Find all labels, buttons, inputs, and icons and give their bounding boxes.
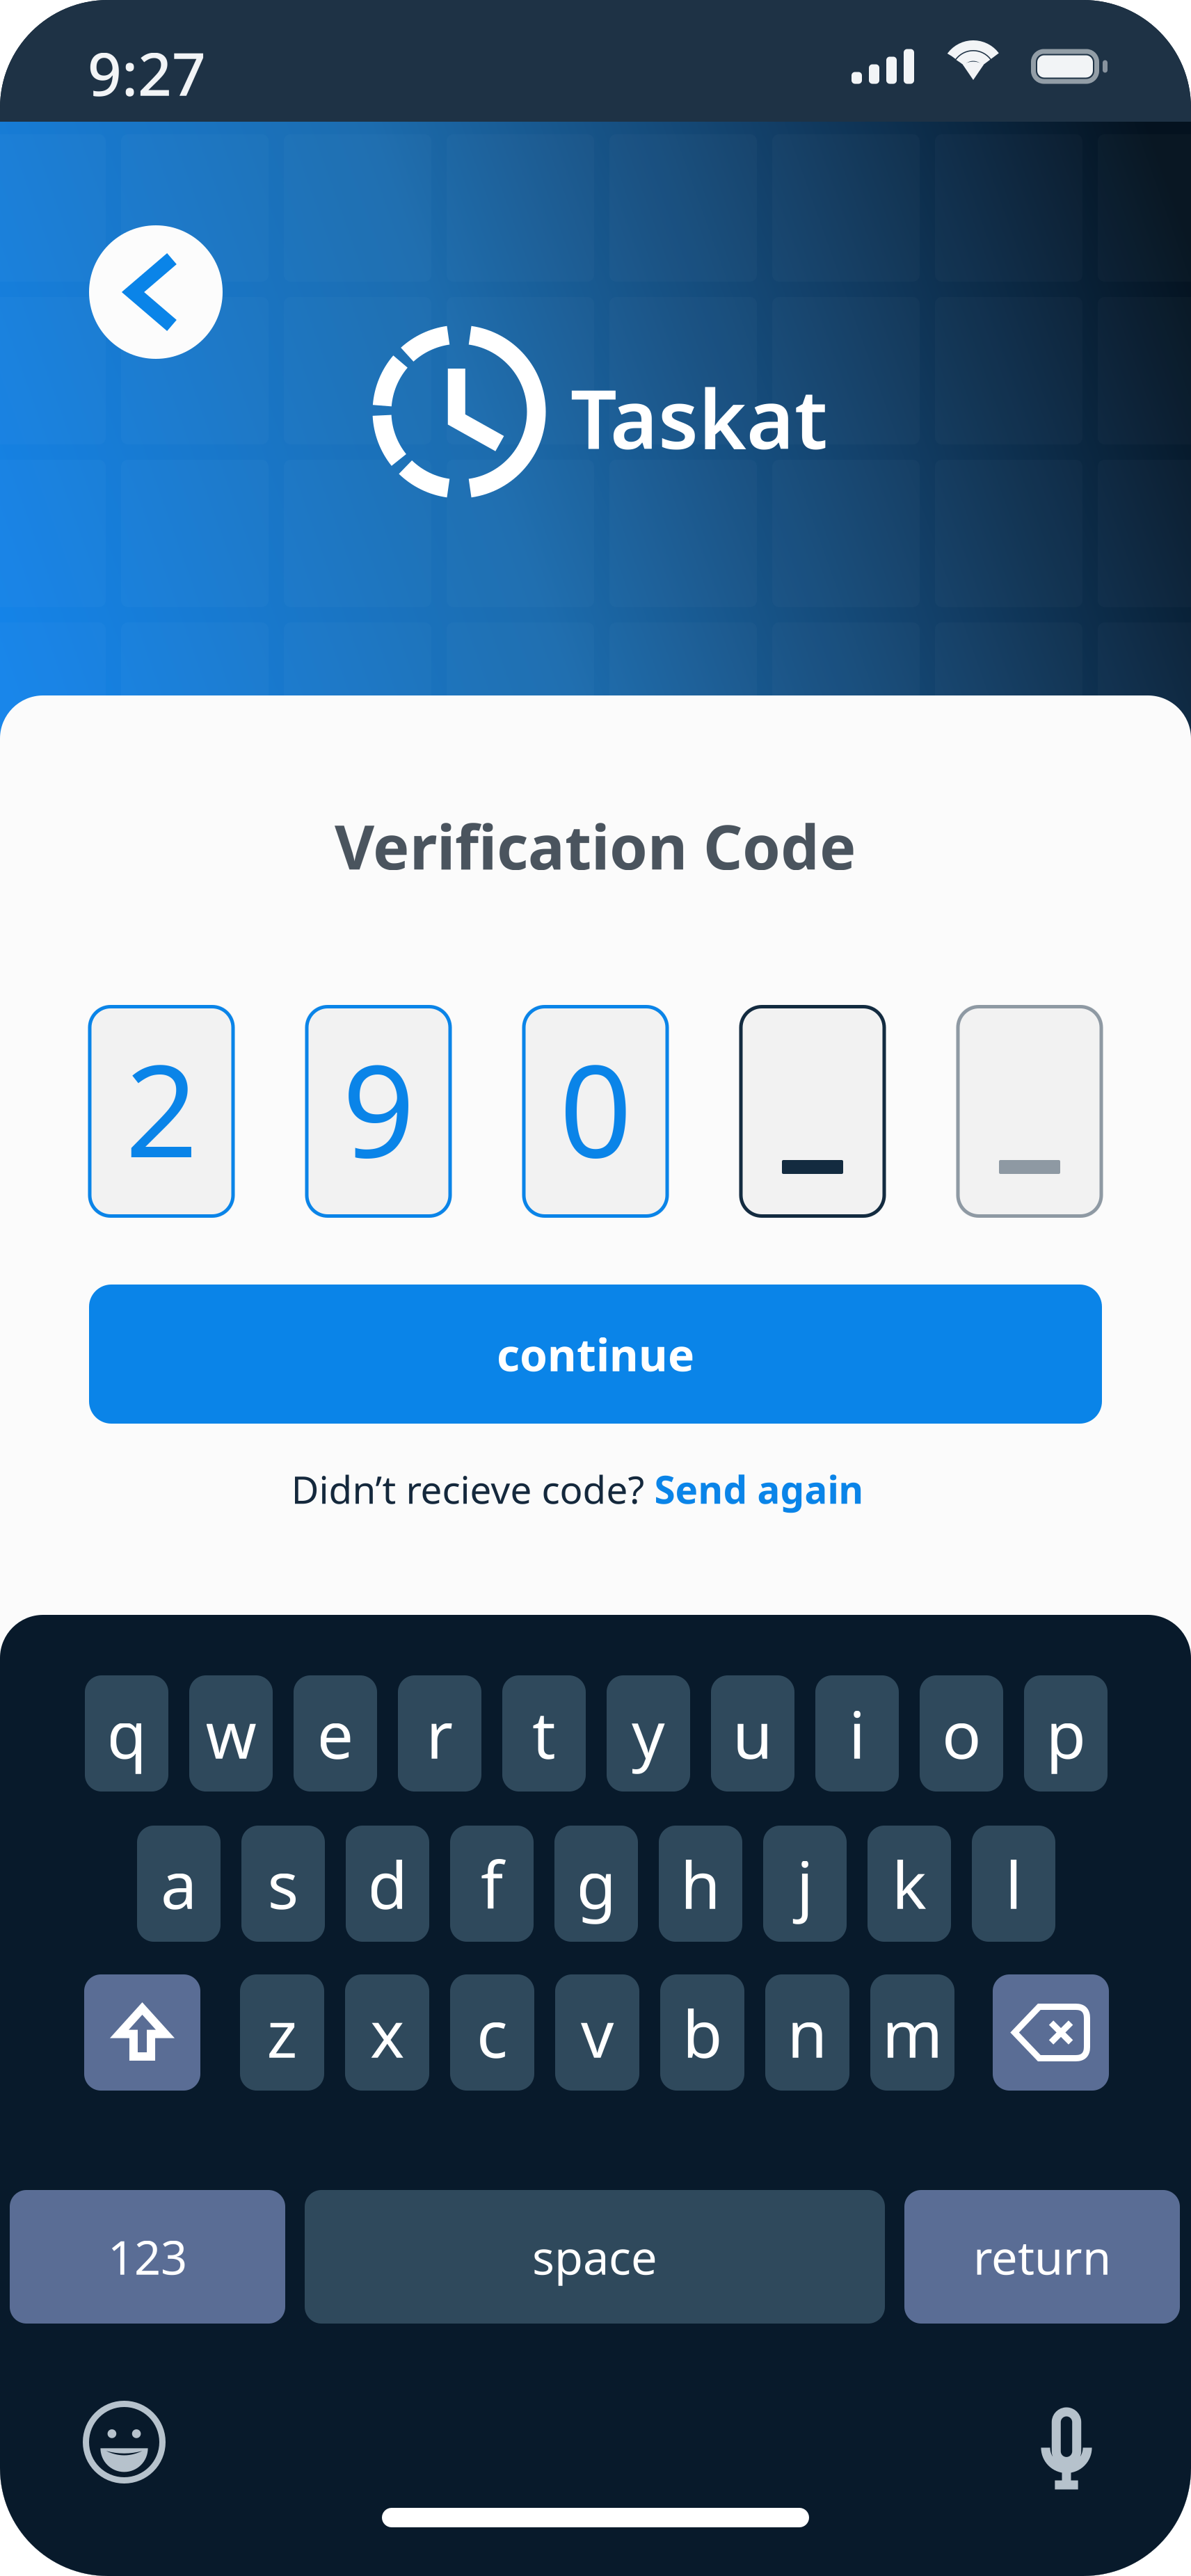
staticText: h bbox=[680, 1841, 721, 1927]
staticText: f bbox=[481, 1841, 503, 1927]
button[interactable]: z bbox=[240, 1974, 324, 2091]
staticText: v bbox=[581, 1989, 614, 2076]
staticText: e bbox=[317, 1690, 354, 1776]
button[interactable]: w bbox=[189, 1675, 273, 1792]
staticText: Send again bbox=[654, 1464, 864, 1514]
staticText: z bbox=[267, 1989, 297, 2076]
staticText: w bbox=[206, 1690, 256, 1776]
button[interactable]: return bbox=[904, 2190, 1180, 2324]
button[interactable]: h bbox=[659, 1826, 742, 1942]
staticText: Taskat bbox=[570, 363, 828, 471]
staticText: u bbox=[733, 1690, 773, 1776]
button[interactable]: o bbox=[920, 1675, 1003, 1792]
staticText: continue bbox=[497, 1325, 694, 1384]
staticText: Didn’t recieve code? bbox=[291, 1464, 645, 1514]
staticText: 9:27 bbox=[88, 33, 206, 112]
staticText: b bbox=[682, 1989, 722, 2076]
staticText: a bbox=[161, 1841, 197, 1927]
staticText: p bbox=[1046, 1690, 1086, 1776]
staticText: i bbox=[849, 1690, 865, 1776]
button[interactable]: e bbox=[294, 1675, 377, 1792]
button[interactable]: d bbox=[346, 1826, 429, 1942]
button[interactable]: Didn’t recieve code? bbox=[0, 1461, 1173, 1517]
button[interactable]: s bbox=[241, 1826, 325, 1942]
staticText: r bbox=[426, 1690, 453, 1776]
button[interactable]: q bbox=[85, 1675, 168, 1792]
staticText: n bbox=[787, 1989, 828, 2076]
staticText: k bbox=[892, 1841, 927, 1927]
button[interactable]: j bbox=[763, 1826, 847, 1942]
button[interactable]: g bbox=[554, 1826, 638, 1942]
staticText: 9 bbox=[342, 1024, 415, 1192]
button[interactable]: f bbox=[450, 1826, 534, 1942]
staticText: 123 bbox=[108, 2226, 187, 2288]
staticText: j bbox=[797, 1841, 813, 1927]
button[interactable]: r bbox=[398, 1675, 481, 1792]
button[interactable]: Dictate bbox=[1028, 2395, 1105, 2502]
button[interactable]: y bbox=[607, 1675, 690, 1792]
button[interactable]: k bbox=[868, 1826, 951, 1942]
staticText: return bbox=[973, 2226, 1111, 2288]
staticText: s bbox=[267, 1841, 299, 1927]
button[interactable]: continue bbox=[89, 1285, 1102, 1424]
staticText: l bbox=[1005, 1841, 1022, 1927]
staticText: y bbox=[632, 1690, 665, 1776]
button[interactable]: i bbox=[815, 1675, 899, 1792]
button[interactable]: n bbox=[765, 1974, 849, 2091]
staticText: t bbox=[532, 1690, 556, 1776]
button[interactable]: space bbox=[305, 2190, 885, 2324]
staticText: space bbox=[532, 2226, 657, 2288]
button[interactable]: Shift bbox=[84, 1974, 200, 2091]
staticText: Verification Code bbox=[335, 805, 856, 886]
button[interactable]: a bbox=[137, 1826, 221, 1942]
button[interactable]: u bbox=[711, 1675, 794, 1792]
staticText: c bbox=[477, 1989, 508, 2076]
staticText: q bbox=[107, 1690, 146, 1776]
button[interactable]: c bbox=[450, 1974, 534, 2091]
button[interactable]: t bbox=[502, 1675, 586, 1792]
staticText: g bbox=[576, 1841, 616, 1927]
staticText: o bbox=[942, 1690, 981, 1776]
button[interactable]: p bbox=[1024, 1675, 1108, 1792]
staticText: 0 bbox=[559, 1024, 632, 1192]
staticText: 2 bbox=[125, 1024, 198, 1192]
button[interactable]: m bbox=[870, 1974, 954, 2091]
button[interactable]: Emoji keyboard bbox=[67, 2385, 181, 2499]
button[interactable]: Back bbox=[89, 225, 223, 359]
button[interactable]: 123 bbox=[10, 2190, 285, 2324]
staticText: m bbox=[882, 1989, 943, 2076]
staticText: x bbox=[370, 1989, 404, 2076]
button[interactable]: b bbox=[660, 1974, 744, 2091]
button[interactable]: v bbox=[555, 1974, 639, 2091]
button[interactable]: Delete bbox=[993, 1974, 1109, 2091]
button[interactable]: x bbox=[345, 1974, 429, 2091]
button[interactable]: l bbox=[972, 1826, 1055, 1942]
staticText: d bbox=[368, 1841, 407, 1927]
